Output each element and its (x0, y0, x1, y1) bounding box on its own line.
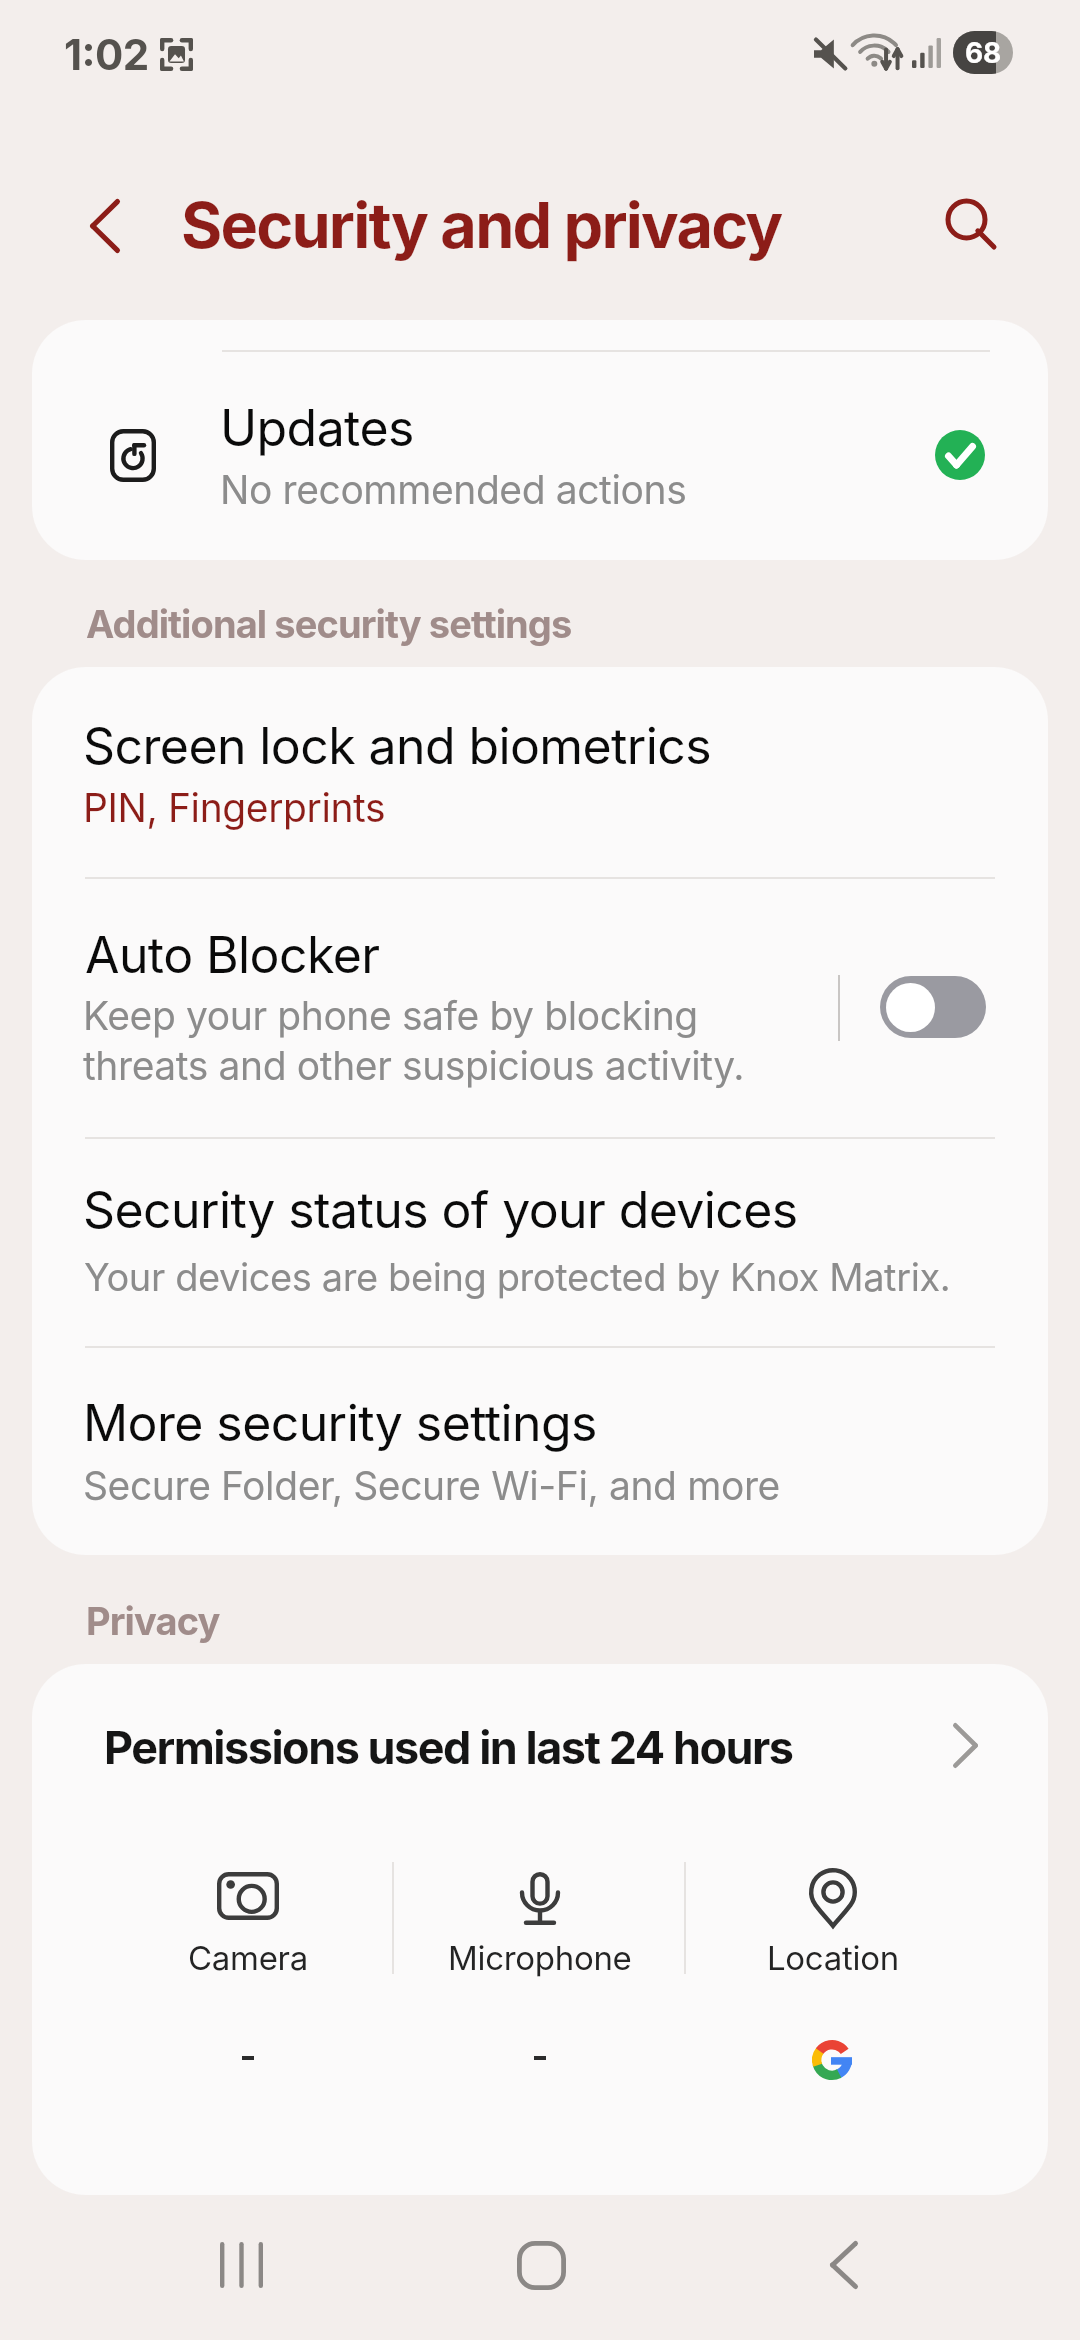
staticText: Camera (188, 1938, 308, 1978)
staticText: Secure Folder, Secure Wi-Fi, and more (83, 1462, 780, 1509)
button[interactable]: Back (784, 2205, 904, 2325)
staticText: Privacy (86, 1598, 220, 1644)
staticText: No recommended actions (220, 466, 687, 513)
staticText: Additional security settings (86, 601, 572, 647)
staticText: Security and privacy (181, 187, 782, 263)
staticText: More security settings (83, 1393, 597, 1453)
button[interactable]: Auto Blocker toggle, off (880, 976, 986, 1038)
button[interactable]: Screen lock and biometrics (32, 667, 1048, 877)
staticText: PIN, Fingerprints (83, 784, 386, 831)
staticText: Location (767, 1938, 899, 1978)
staticText: Your devices are being protected by Knox… (84, 1254, 951, 1300)
staticText: Updates (220, 398, 414, 458)
button[interactable]: Permissions used in last 24 hours (32, 1664, 1048, 1804)
button[interactable]: Search (914, 167, 1019, 272)
staticText: Permissions used in last 24 hours (104, 1720, 793, 1774)
button[interactable]: Microphone (400, 1854, 680, 1980)
button[interactable]: Updates (32, 320, 1048, 560)
staticText: Keep your phone safe by blocking threats… (83, 992, 744, 1089)
staticText: 68 (965, 36, 1002, 70)
button[interactable]: Camera (108, 1854, 388, 1980)
staticText: Security status of your devices (83, 1180, 798, 1240)
button[interactable]: Home (481, 2205, 601, 2325)
button[interactable]: Security status of your devices (32, 1138, 1048, 1346)
button[interactable]: More security settings (32, 1347, 1048, 1555)
button[interactable]: Auto Blocker (32, 878, 1048, 1137)
staticText: Microphone (448, 1938, 632, 1978)
staticText: Screen lock and biometrics (83, 716, 712, 776)
button[interactable]: Recent apps (181, 2205, 301, 2325)
staticText: Auto Blocker (85, 925, 380, 985)
button[interactable]: Location (693, 1854, 973, 1980)
button[interactable]: Navigate up (52, 173, 157, 278)
staticText: 1:02 (64, 29, 149, 80)
